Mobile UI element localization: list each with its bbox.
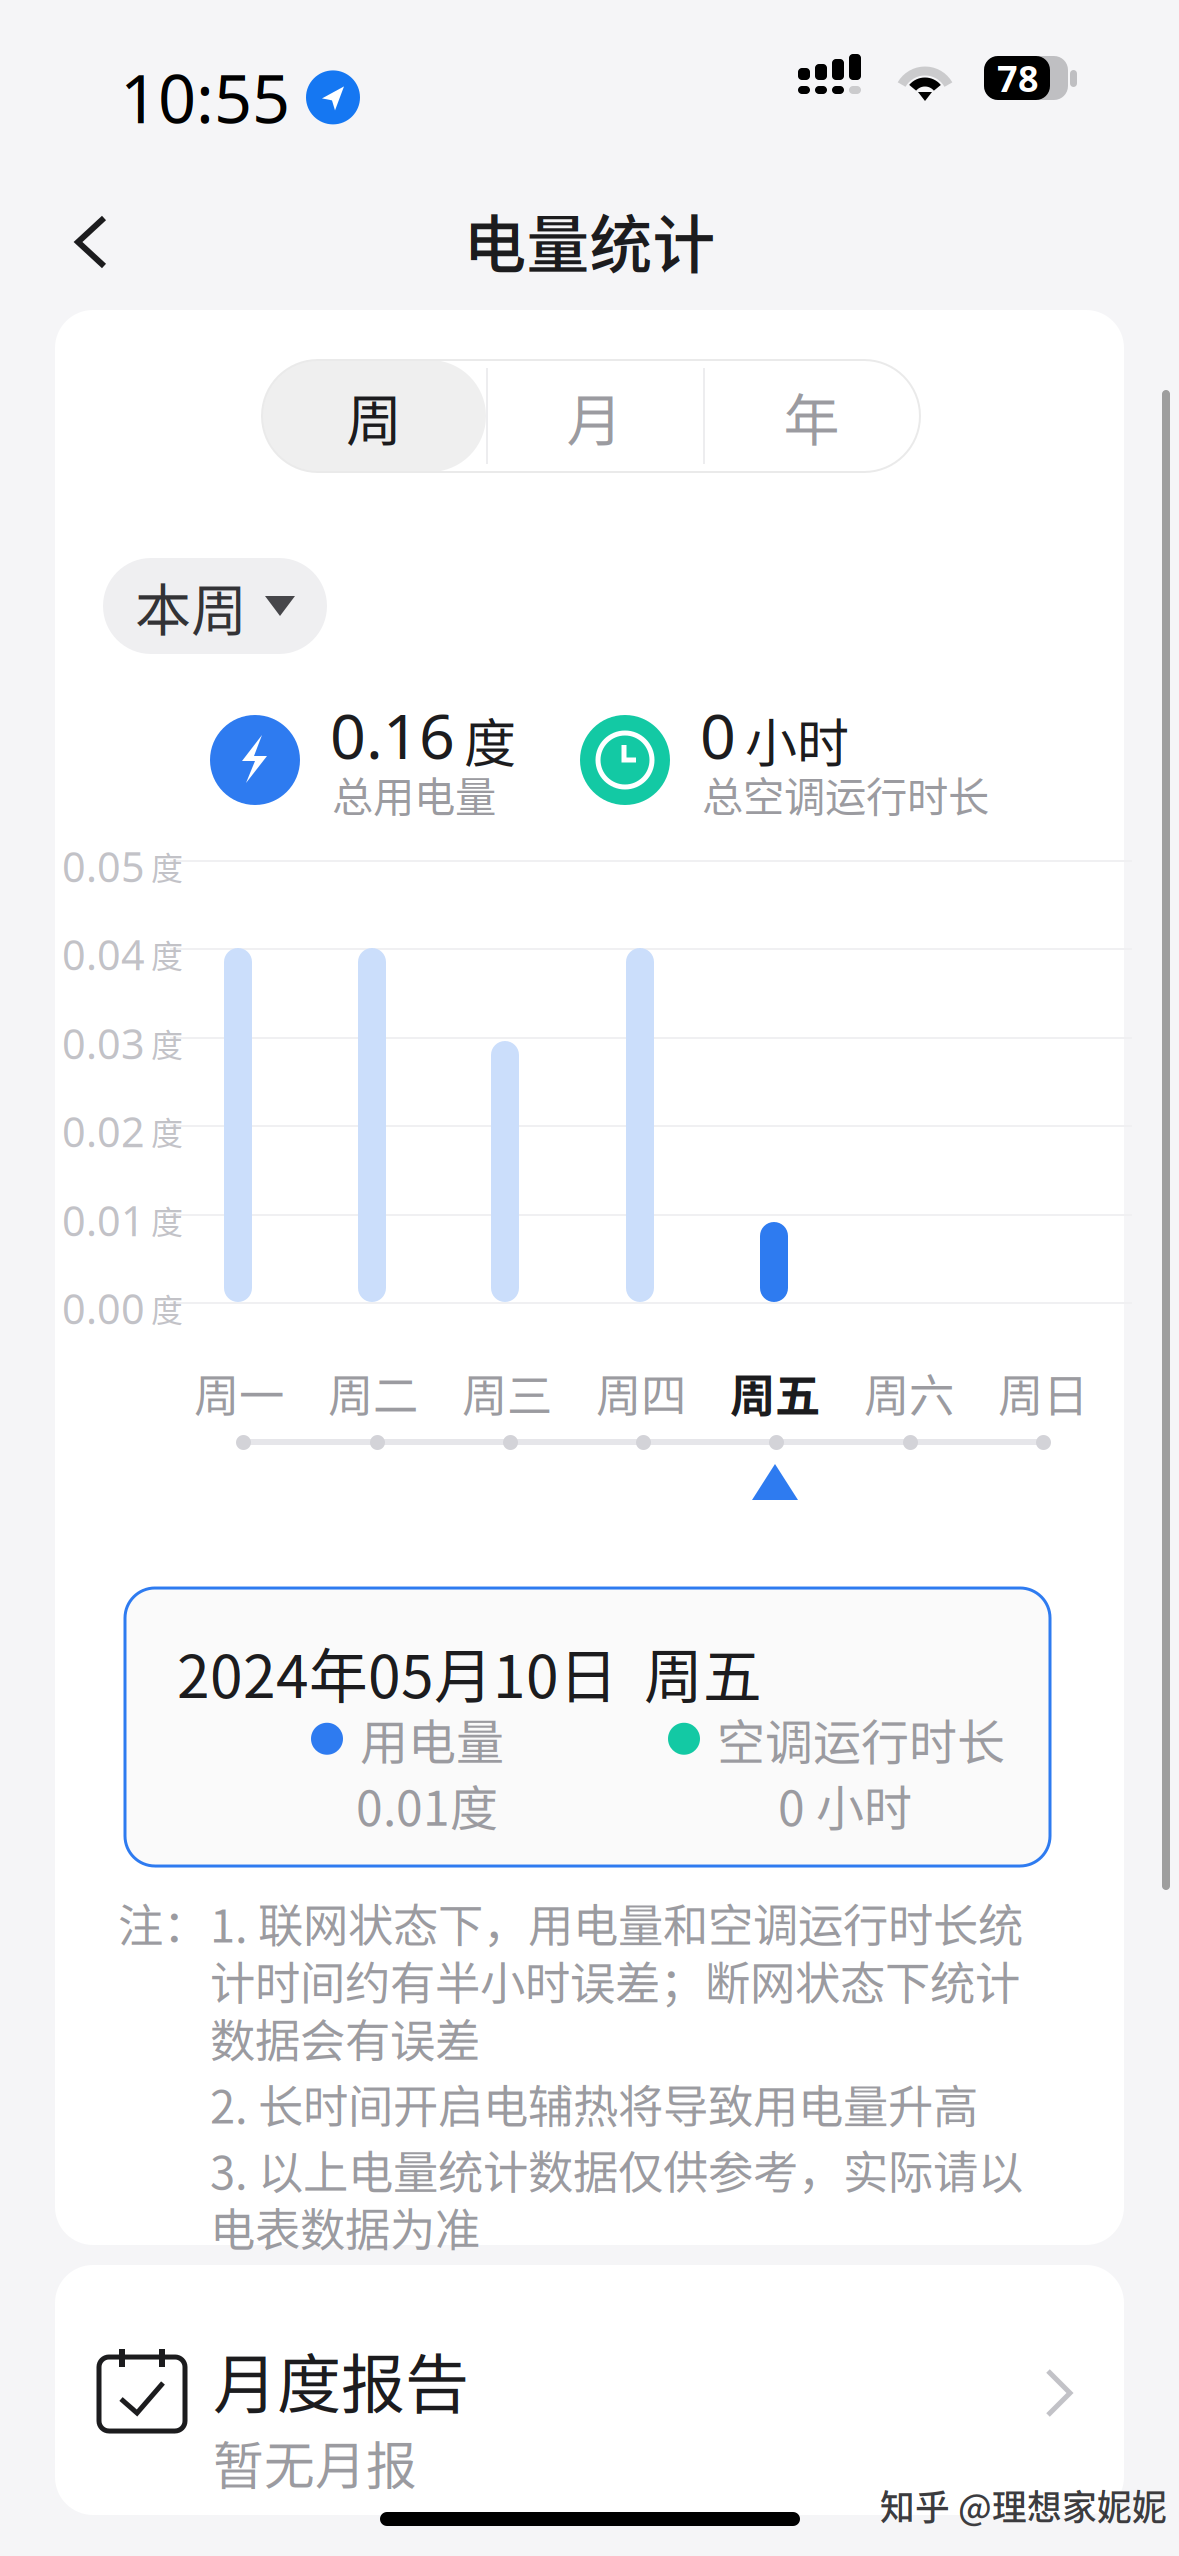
staticText: 度 — [151, 1285, 183, 1331]
staticText: 0.01度 — [356, 1770, 498, 1839]
staticText: 度 — [151, 1108, 183, 1154]
staticText: 总用电量 — [332, 764, 496, 824]
staticText: 注： — [118, 1890, 208, 1956]
staticText: 0.02 — [62, 1103, 145, 1159]
staticText: 0.01 — [62, 1192, 145, 1248]
staticText: 2. 长时间开启电辅热将导致用电量升高 — [210, 2071, 978, 2136]
staticText: 0.00 — [62, 1280, 145, 1336]
staticText: 度 — [151, 1197, 183, 1243]
button[interactable]: 本周 — [103, 558, 327, 654]
staticText: 78 — [997, 53, 1039, 102]
staticText: 周 — [346, 375, 402, 457]
staticText: 度 — [151, 1020, 183, 1066]
staticText: 2024年05月10日 周五 — [177, 1630, 762, 1715]
staticText: 度 — [151, 931, 183, 977]
staticText: 月 — [566, 375, 622, 457]
staticText: 3. 以上电量统计数据仅供参考，实际请以电表数据为准 — [210, 2137, 1023, 2260]
staticText: 0.05 — [62, 838, 145, 894]
staticText: 电量统计 — [463, 195, 715, 285]
button[interactable]: 周 — [262, 360, 486, 472]
staticText: 知乎 @理想家妮妮 — [880, 2480, 1167, 2530]
staticText: 暂无月报 — [213, 2426, 417, 2499]
staticText: 0 小时 — [778, 1770, 912, 1839]
staticText: 周二 — [328, 1360, 418, 1426]
staticText: 0.16 — [330, 692, 455, 777]
staticText: 总空调运行时长 — [702, 764, 989, 824]
staticText: 1. 联网状态下，用电量和空调运行时长统计时间约有半小时误差；断网状态下统计数据… — [210, 1890, 1023, 2071]
staticText: 空调运行时长 — [717, 1704, 1005, 1773]
staticText: 本周 — [135, 565, 247, 647]
staticText: 周一 — [194, 1360, 284, 1426]
button[interactable]: 年 — [703, 360, 920, 472]
staticText: 周四 — [596, 1360, 686, 1426]
staticText: 0.03 — [62, 1015, 145, 1071]
staticText: 周六 — [864, 1360, 954, 1426]
button[interactable]: Back — [56, 202, 136, 282]
staticText: 10:55 — [120, 52, 290, 143]
staticText: 0 — [700, 692, 736, 777]
staticText: 度 — [151, 843, 183, 889]
staticText: 周五 — [730, 1360, 820, 1426]
staticText: 度 — [464, 702, 516, 777]
button[interactable]: 月 — [486, 360, 703, 472]
staticText: 年 — [783, 375, 839, 457]
staticText: 用电量 — [360, 1704, 504, 1773]
staticText: 0.04 — [62, 926, 145, 982]
staticText: 周三 — [462, 1360, 552, 1426]
staticText: 周日 — [998, 1360, 1088, 1426]
staticText: 小时 — [745, 702, 849, 777]
button[interactable]: 月度报告 — [55, 2265, 1124, 2515]
staticText: 月度报告 — [213, 2333, 469, 2426]
